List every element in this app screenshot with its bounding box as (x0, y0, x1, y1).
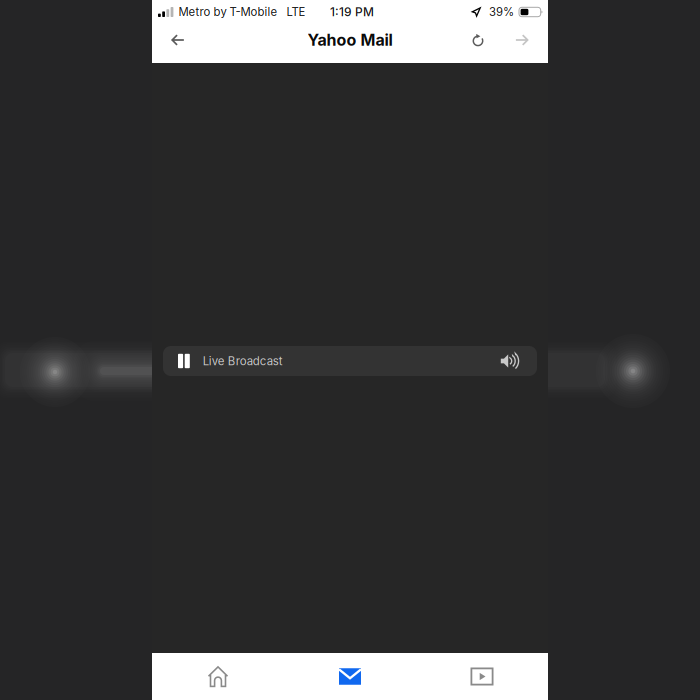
staticText: Live Broadcast (203, 354, 283, 368)
button[interactable]: Home (152, 653, 284, 700)
staticText: 39% (489, 5, 514, 19)
staticText: Metro by T-Mobile (178, 5, 277, 19)
button[interactable]: Forward (497, 24, 546, 56)
button[interactable]: Videos (416, 653, 548, 700)
button[interactable]: Refresh (458, 24, 497, 56)
staticText: LTE (286, 5, 305, 19)
button[interactable]: Back (152, 24, 204, 56)
staticText: Yahoo Mail (307, 30, 392, 50)
button[interactable]: Mail (284, 653, 416, 700)
staticText: 1:19 PM (330, 5, 374, 19)
